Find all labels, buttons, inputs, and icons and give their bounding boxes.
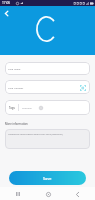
staticText: Clothing <box>22 106 32 109</box>
staticText: Card Number <box>8 86 24 89</box>
staticText: Save <box>43 176 52 181</box>
button[interactable]: Card Number <box>5 80 90 94</box>
button[interactable]: Back <box>1 8 12 19</box>
staticText: Card name <box>8 67 21 70</box>
button[interactable]: Add tag <box>38 105 44 111</box>
button[interactable]: Back <box>72 189 82 199</box>
button[interactable]: Save <box>9 171 86 185</box>
button[interactable]: Scan barcode <box>78 83 87 92</box>
staticText: More information <box>5 122 28 126</box>
staticText: Additional information about this card (… <box>8 132 63 135</box>
button[interactable]: Home <box>43 189 53 199</box>
button[interactable]: Tags <box>5 100 90 115</box>
staticText: 17:06 <box>2 1 11 5</box>
staticText: Tags <box>9 106 15 110</box>
button[interactable]: Additional information about this card (… <box>5 129 90 149</box>
button[interactable]: Recent apps <box>13 189 23 199</box>
button[interactable]: Card name <box>5 62 90 75</box>
